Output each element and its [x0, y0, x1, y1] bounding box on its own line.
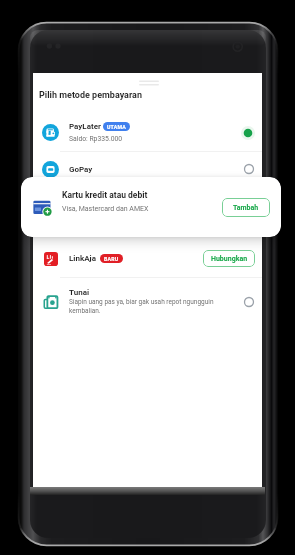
staticText: Siapin uang pas ya, biar gak usah repot …: [69, 298, 231, 315]
other: Not selected: [243, 163, 255, 175]
button[interactable]: GoPay: [33, 156, 262, 182]
staticText: Saldo: Rp335.000: [69, 135, 123, 143]
staticText: Pilih metode pembayaran: [39, 90, 142, 101]
staticText: Tambah: [233, 204, 259, 212]
button[interactable]: PayLater: [33, 118, 262, 147]
staticText: UTAMA: [107, 124, 126, 130]
button[interactable]: LinkAja: [33, 246, 262, 271]
staticText: GoPay: [69, 165, 93, 174]
other: Not selected: [243, 296, 255, 308]
staticText: Tunai: [69, 288, 90, 297]
staticText: Visa, Mastercard dan AMEX: [62, 205, 149, 213]
staticText: LinkAja: [69, 254, 96, 263]
staticText: Hubungkan: [211, 255, 248, 263]
staticText: Kartu kredit atau debit: [62, 190, 148, 200]
button[interactable]: Kartu kredit atau debit: [21, 177, 281, 237]
button[interactable]: Hubungkan: [203, 250, 255, 267]
button[interactable]: Tunai: [33, 283, 262, 320]
other: PayLater selected: [241, 126, 255, 140]
staticText: PayLater: [69, 122, 101, 131]
staticText: BARU: [104, 256, 119, 262]
button[interactable]: Tambah: [222, 198, 270, 217]
